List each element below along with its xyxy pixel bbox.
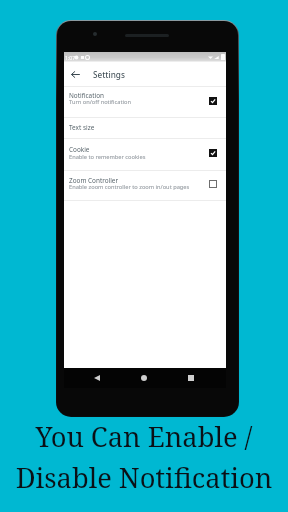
button[interactable]: Recent apps [184, 371, 198, 385]
button[interactable]: Zoom Controller [64, 171, 226, 201]
button[interactable]: Home [137, 371, 151, 385]
staticText: Settings [93, 69, 125, 80]
staticText: You Can Enable / [0, 418, 288, 455]
staticText: Zoom Controller [69, 176, 119, 185]
staticText: Disable Notification [0, 459, 288, 496]
button[interactable]: Back [67, 66, 83, 82]
button[interactable]: Unchecked [205, 176, 221, 192]
staticText: 1:07 [65, 54, 76, 61]
staticText: Enable to remember cookies [69, 153, 146, 161]
button[interactable]: Text size [64, 118, 226, 139]
button[interactable]: Checked [205, 145, 221, 161]
staticText: Notification [69, 91, 104, 100]
button[interactable]: Back [90, 371, 104, 385]
staticText: Enable zoom controller to zoom in/out pa… [69, 183, 190, 191]
button[interactable]: Checked [205, 93, 221, 109]
staticText: Turn on/off notification [69, 98, 131, 106]
staticText: Cookie [69, 145, 90, 154]
staticText: Text size [69, 123, 95, 132]
button[interactable]: Notification [64, 87, 226, 118]
button[interactable]: Cookie [64, 139, 226, 171]
